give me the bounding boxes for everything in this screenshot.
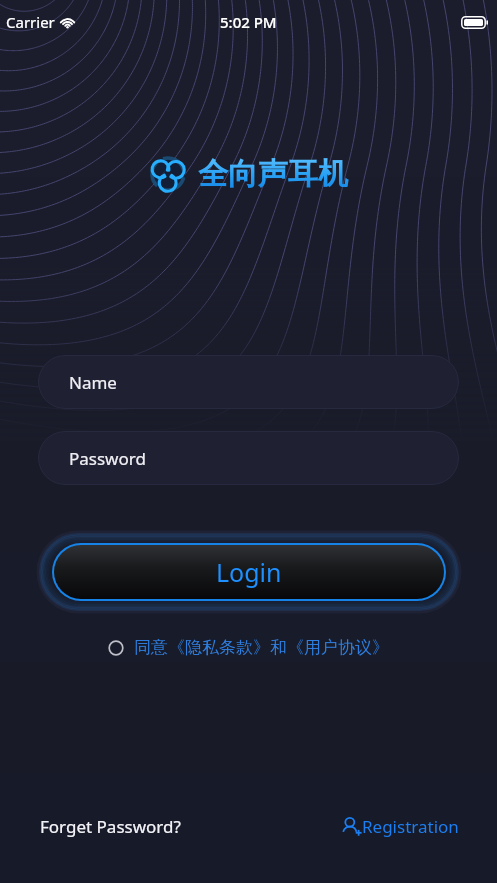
staticText: Password — [69, 447, 146, 470]
button[interactable]: Password — [38, 431, 459, 485]
staticText: 同意《隐私条款》和《用户协议》 — [134, 637, 389, 658]
button[interactable]: Login — [54, 545, 444, 599]
button[interactable]: Name — [38, 355, 459, 409]
button[interactable]: 同意《隐私条款》和《用户协议》 — [108, 637, 389, 658]
staticText: Carrier — [6, 12, 55, 32]
other: Registration — [341, 816, 362, 837]
staticText: Name — [69, 371, 117, 394]
button[interactable]: Registration — [341, 815, 459, 838]
button[interactable]: Forget Password? — [40, 815, 181, 838]
staticText: Registration — [362, 815, 459, 838]
staticText: 全向声耳机 — [198, 155, 348, 193]
staticText: Login — [216, 555, 282, 589]
staticText: 5:02 PM — [220, 12, 277, 32]
